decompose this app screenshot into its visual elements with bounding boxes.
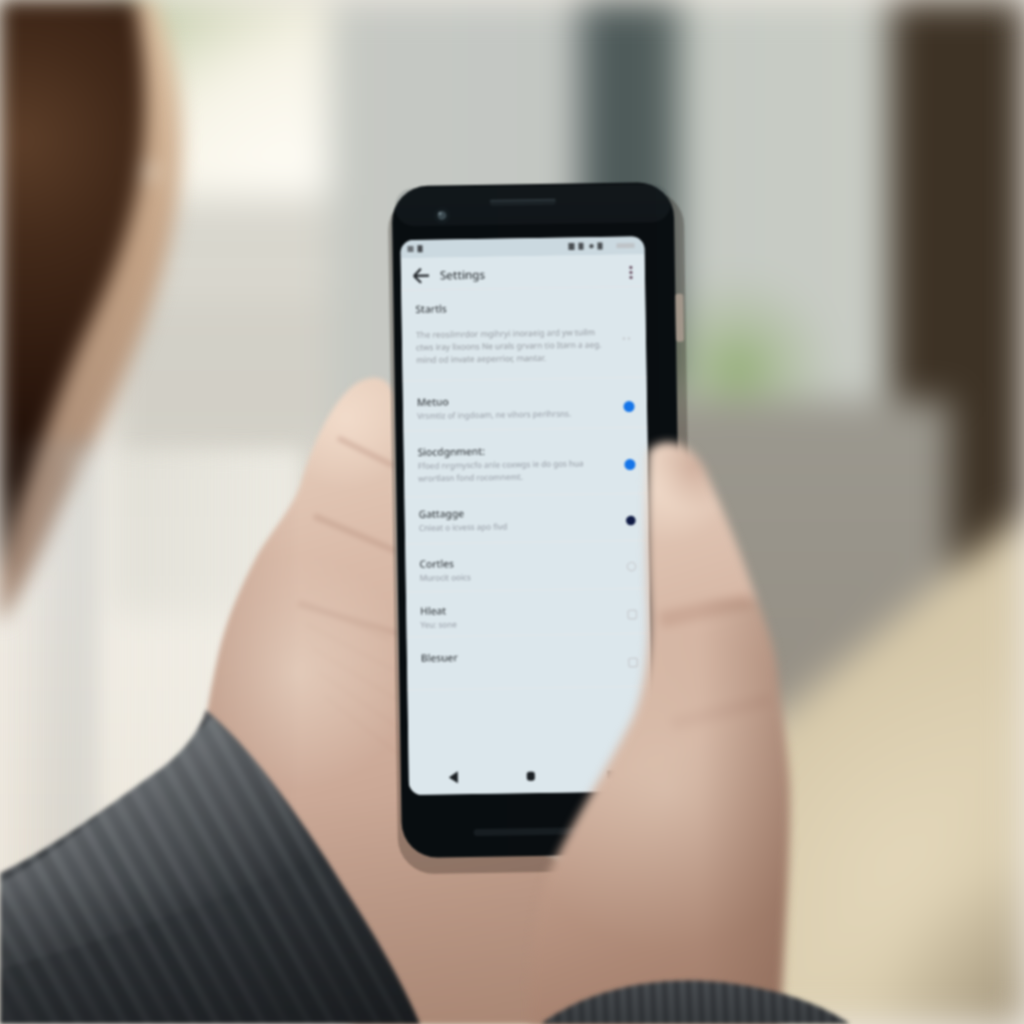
button[interactable]: More options (620, 258, 650, 294)
staticText: Gattagge (403, 496, 408, 497)
button[interactable]: Gattagge (403, 496, 649, 542)
button[interactable]: Back (424, 764, 468, 792)
staticText: Siocdgnment: (403, 434, 410, 435)
button[interactable]: Cortles (403, 545, 649, 589)
button[interactable]: Blesuer (403, 639, 649, 687)
staticText: Hleat (403, 592, 406, 593)
button[interactable]: Hleat (403, 592, 649, 636)
button[interactable]: Home (494, 764, 538, 792)
button[interactable]: Settings (440, 258, 600, 294)
staticText: Blesuer (403, 639, 407, 640)
button[interactable]: Recent apps (560, 764, 604, 792)
staticText: Metuo (403, 385, 407, 386)
button[interactable]: Back (404, 258, 442, 294)
button[interactable]: Metuo (403, 385, 649, 429)
staticText: Cortles (403, 545, 407, 546)
button[interactable]: Siocdgnment: (403, 434, 649, 492)
